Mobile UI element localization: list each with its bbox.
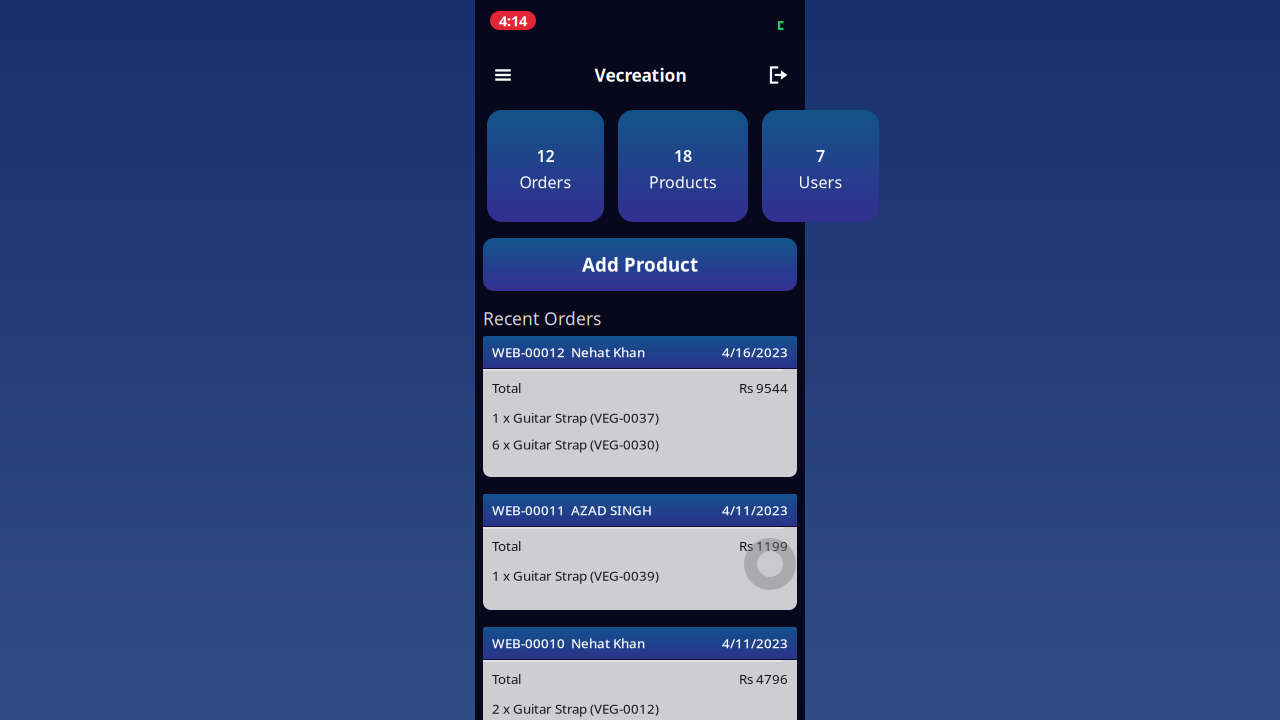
staticText: Nehat Khan (565, 634, 645, 652)
staticText: Rs 4796 (739, 670, 788, 688)
button[interactable]: 12 (487, 110, 604, 222)
staticText: Add Product (582, 252, 698, 277)
button[interactable]: 18 (618, 110, 748, 222)
staticText: 4/11/2023 (722, 501, 788, 519)
staticText: 2 x Guitar Strap (VEG-0012) (492, 700, 659, 717)
staticText: 4:14 (499, 11, 527, 30)
staticText: 6 x Guitar Strap (VEG-0030) (492, 435, 659, 453)
button[interactable]: WEB-00011 (483, 494, 797, 610)
staticText: Total (492, 537, 521, 555)
staticText: WEB-00012 (492, 343, 565, 361)
staticText: AZAD SINGH (565, 501, 652, 519)
staticText: Orders (519, 171, 571, 193)
button[interactable]: WEB-00010 (483, 627, 797, 720)
staticText: 4/11/2023 (722, 634, 788, 652)
staticText: WEB-00011 (492, 501, 565, 519)
staticText: 4/16/2023 (722, 343, 788, 361)
button[interactable]: Log out (762, 59, 794, 91)
button[interactable]: Menu (487, 59, 519, 91)
staticText: 18 (674, 145, 692, 166)
staticText: 1 x Guitar Strap (VEG-0039) (492, 567, 659, 584)
button[interactable]: WEB-00012 (483, 336, 797, 477)
staticText: 1 x Guitar Strap (VEG-0037) (492, 409, 659, 426)
staticText: Rs 9544 (739, 379, 788, 397)
staticText: Vecreation (594, 63, 686, 86)
staticText: WEB-00010 (492, 634, 565, 652)
staticText: Rs 1199 (739, 537, 788, 555)
staticText: 7 (816, 145, 825, 166)
staticText: Total (492, 670, 521, 688)
staticText: Total (492, 379, 521, 397)
staticText: Recent Orders (483, 307, 601, 330)
staticText: Nehat Khan (565, 343, 645, 361)
button[interactable]: Add Product (483, 238, 797, 291)
staticText: Users (798, 171, 842, 193)
staticText: Products (649, 171, 717, 193)
button[interactable]: 7 (762, 110, 879, 222)
staticText: 12 (536, 145, 554, 166)
